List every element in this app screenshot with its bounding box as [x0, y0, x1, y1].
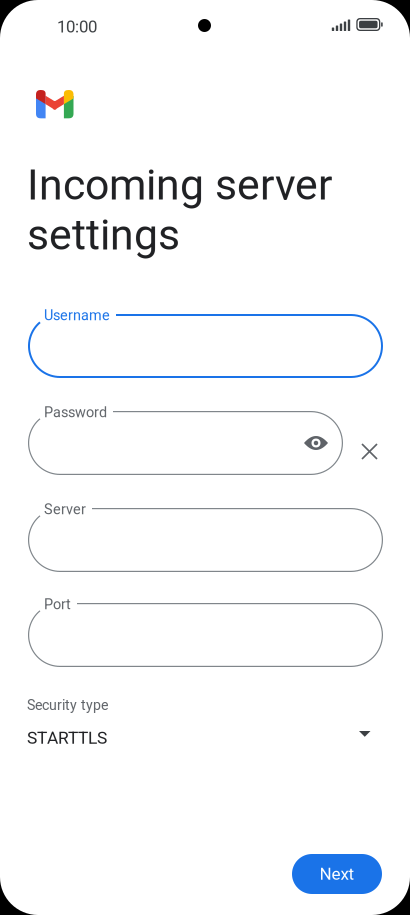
staticText: Password: [44, 404, 107, 421]
button[interactable]: Security type: [0, 690, 410, 758]
staticText: Security type: [27, 697, 108, 714]
staticText: Username: [44, 307, 110, 324]
button[interactable]: Password: [28, 411, 343, 475]
button[interactable]: Username: [28, 314, 383, 378]
staticText: Incoming server settings: [27, 160, 332, 260]
button[interactable]: Clear password: [361, 443, 378, 460]
staticText: Next: [319, 864, 354, 884]
button[interactable]: Server: [28, 508, 383, 572]
button[interactable]: Port: [28, 603, 383, 667]
staticText: 10:00: [57, 17, 97, 37]
button[interactable]: Next: [292, 854, 382, 894]
staticText: Server: [44, 501, 86, 518]
staticText: Port: [44, 596, 71, 613]
staticText: STARTTLS: [27, 728, 107, 748]
